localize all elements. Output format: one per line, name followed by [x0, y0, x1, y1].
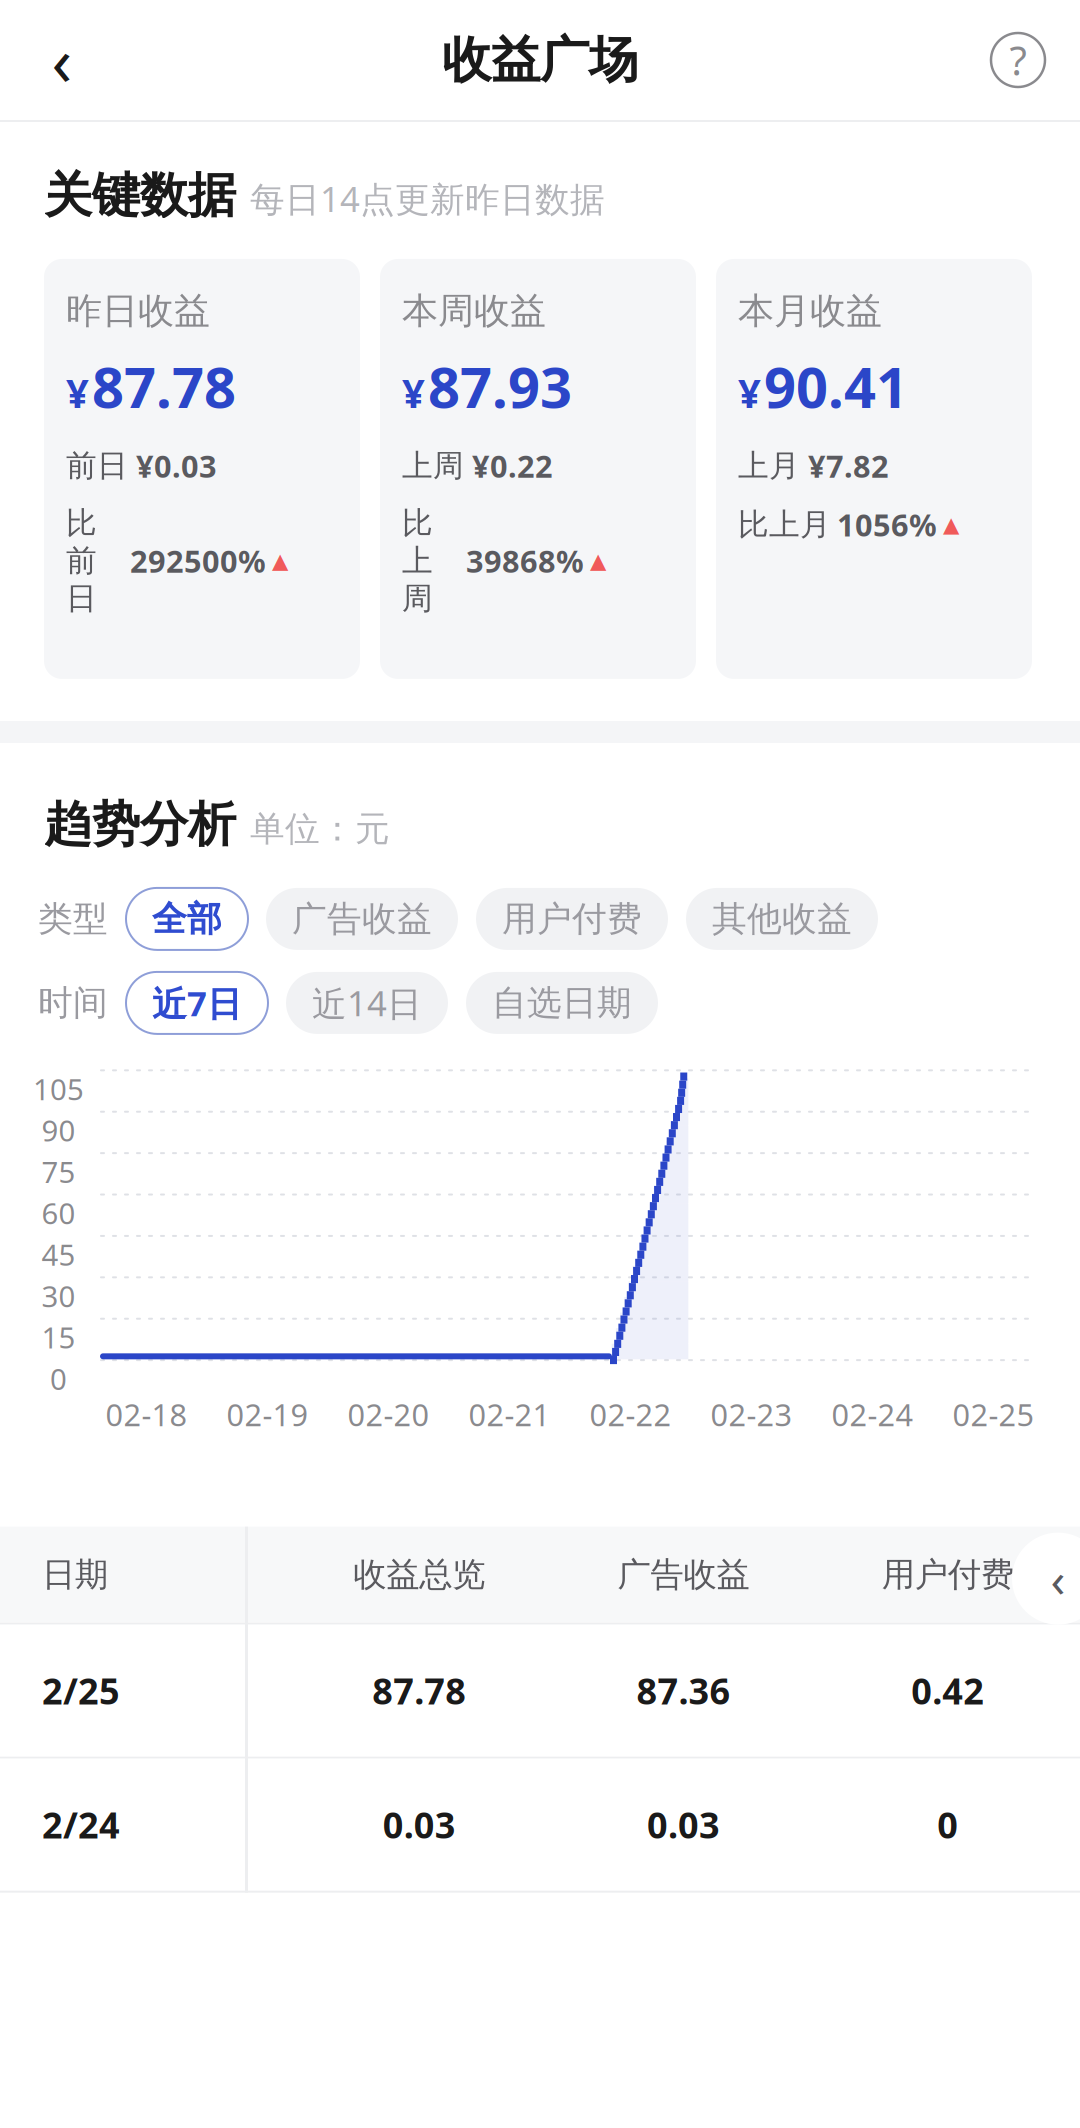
staticText: 87.78 — [92, 349, 236, 424]
button[interactable]: 返回 — [22, 20, 102, 100]
staticText: 广告收益 — [292, 898, 432, 940]
staticText: 15 — [41, 1318, 75, 1357]
staticText: 1056% — [837, 504, 937, 545]
staticText: 292500% — [130, 540, 266, 581]
staticText: ▲ — [590, 549, 606, 573]
staticText: 0 — [50, 1359, 67, 1398]
staticText: 关键数据 — [44, 166, 236, 225]
staticText: 0.03 — [647, 1801, 720, 1848]
staticText: 广告收益 — [617, 1554, 749, 1595]
staticText: 02-24 — [831, 1394, 913, 1435]
staticText: 02-18 — [105, 1394, 187, 1435]
button[interactable]: 自选日期 — [466, 972, 658, 1034]
staticText: 前日 — [66, 447, 128, 485]
staticText: ? — [1009, 33, 1026, 86]
staticText: 近7日 — [152, 980, 242, 1026]
staticText: ▲ — [272, 549, 288, 573]
staticText: 时间 — [38, 982, 108, 1024]
staticText: 上周 — [402, 447, 464, 485]
button[interactable]: 全部 — [126, 888, 248, 950]
staticText: 每日14点更新昨日数据 — [250, 175, 605, 221]
staticText: ¥0.22 — [472, 445, 553, 486]
staticText: 45 — [41, 1235, 75, 1274]
staticText: 0.03 — [383, 1801, 456, 1848]
staticText: 0.42 — [911, 1667, 984, 1714]
staticText: 用户付费 — [882, 1554, 1014, 1595]
staticText: 日期 — [42, 1554, 108, 1595]
button[interactable]: 向左滚动表格 — [1012, 1533, 1080, 1625]
staticText: ‹ — [51, 16, 72, 104]
staticText: 近14日 — [312, 980, 422, 1026]
staticText: 比前日 — [66, 504, 97, 617]
button[interactable]: 用户付费 — [476, 888, 668, 950]
staticText: 02-25 — [952, 1394, 1034, 1435]
staticText: ¥ — [66, 366, 89, 419]
staticText: 0 — [937, 1801, 958, 1848]
staticText: 自选日期 — [492, 982, 632, 1024]
staticText: 趋势分析 — [44, 795, 236, 854]
staticText: 90.41 — [764, 349, 908, 424]
staticText: ‹ — [1050, 1547, 1065, 1610]
staticText: 单位：元 — [250, 808, 390, 850]
staticText: 87.36 — [636, 1667, 730, 1714]
staticText: 2/24 — [42, 1801, 120, 1848]
staticText: 02-21 — [468, 1394, 550, 1435]
staticText: ¥0.03 — [136, 445, 217, 486]
staticText: 全部 — [152, 898, 222, 940]
staticText: ¥7.82 — [808, 445, 889, 486]
staticText: 75 — [41, 1152, 75, 1191]
staticText: 87.93 — [428, 349, 572, 424]
staticText: 105 — [33, 1069, 84, 1108]
staticText: 02-20 — [347, 1394, 429, 1435]
staticText: 上月 — [738, 447, 800, 485]
staticText: 收益总览 — [353, 1554, 485, 1595]
staticText: 90 — [41, 1111, 75, 1150]
button[interactable]: 帮助 — [978, 20, 1058, 100]
staticText: 2/25 — [42, 1667, 120, 1714]
staticText: 比上周 — [402, 504, 433, 617]
staticText: 02-19 — [226, 1394, 308, 1435]
staticText: 87.78 — [372, 1667, 466, 1714]
staticText: ▲ — [943, 512, 959, 537]
staticText: 30 — [41, 1276, 75, 1315]
staticText: 类型 — [38, 898, 108, 940]
button[interactable]: 近7日 — [126, 972, 268, 1034]
staticText: 本周收益 — [402, 289, 546, 333]
button[interactable]: 广告收益 — [266, 888, 458, 950]
button[interactable]: 近14日 — [286, 972, 448, 1034]
staticText: 收益广场 — [442, 30, 638, 90]
staticText: 60 — [41, 1193, 75, 1232]
staticText: 比上月 — [738, 506, 831, 543]
staticText: ¥ — [402, 366, 425, 419]
staticText: 本月收益 — [738, 289, 882, 333]
staticText: 02-23 — [710, 1394, 792, 1435]
staticText: 其他收益 — [712, 898, 852, 940]
staticText: 用户付费 — [502, 898, 642, 940]
staticText: ¥ — [738, 366, 761, 419]
staticText: 02-22 — [589, 1394, 671, 1435]
staticText: 39868% — [466, 540, 584, 581]
staticText: 昨日收益 — [66, 289, 210, 333]
button[interactable]: 其他收益 — [686, 888, 878, 950]
